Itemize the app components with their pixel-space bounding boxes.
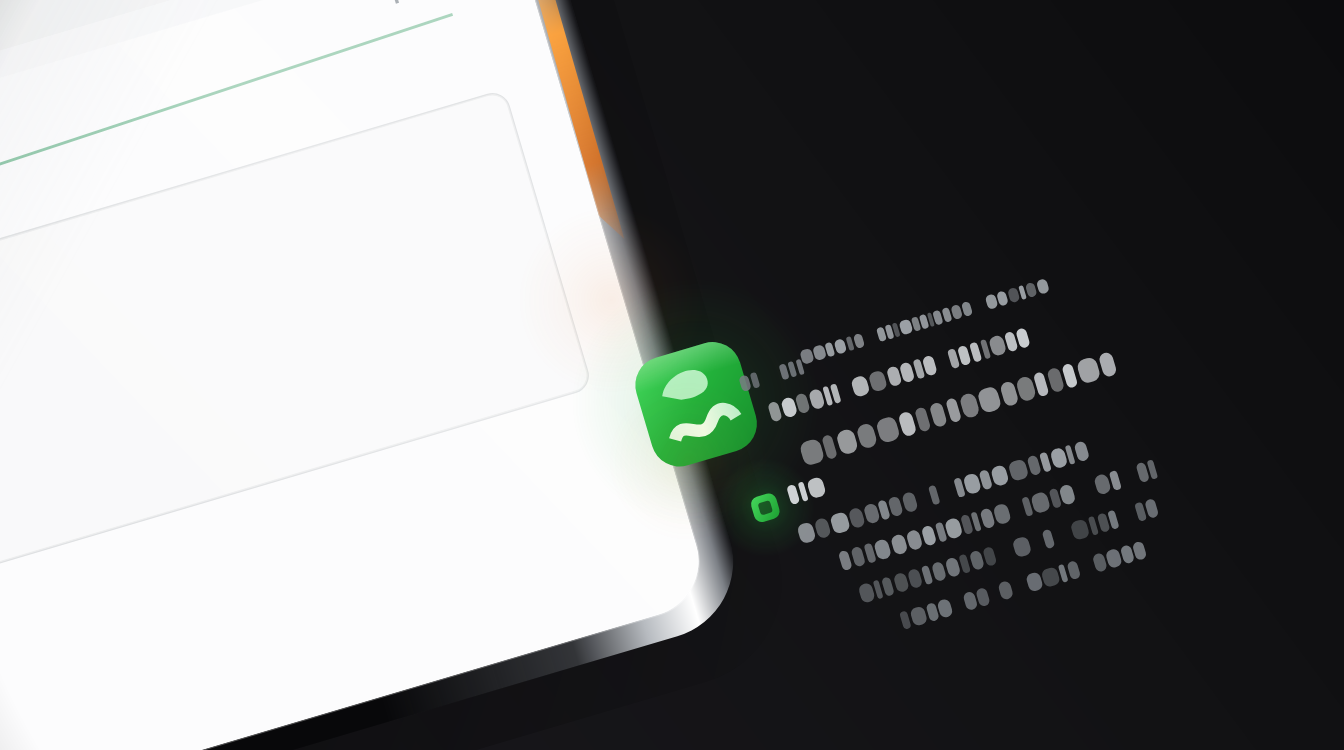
button[interactable]: Phone showing sign-up form on dark surfa… [0, 0, 1344, 750]
